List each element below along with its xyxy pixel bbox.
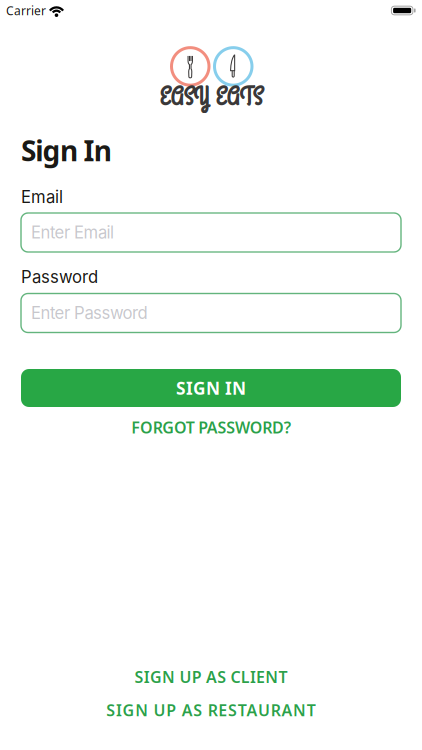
staticText: SIGN UP AS CLIENT	[135, 666, 287, 687]
staticText: SIGN IN	[176, 376, 246, 399]
staticText: EASY EATS	[159, 80, 262, 115]
staticText: FORGOT PASSWORD?	[131, 417, 291, 438]
staticText: Enter Email	[31, 222, 114, 243]
button[interactable]: FORGOT PASSWORD?	[131, 418, 291, 436]
staticText: SIGN UP AS RESTAURANT	[106, 699, 316, 721]
staticText: Sign In	[21, 132, 112, 169]
button[interactable]: Enter Email	[21, 213, 401, 252]
button[interactable]: Enter Password	[21, 293, 401, 332]
button[interactable]: SIGN IN	[21, 369, 401, 407]
button[interactable]: SIGN UP AS RESTAURANT	[106, 701, 316, 719]
staticText: Enter Password	[31, 303, 147, 323]
staticText: Email	[21, 187, 63, 207]
button[interactable]: SIGN UP AS CLIENT	[135, 668, 287, 686]
staticText: Password	[21, 267, 98, 287]
staticText: Carrier	[6, 2, 46, 18]
